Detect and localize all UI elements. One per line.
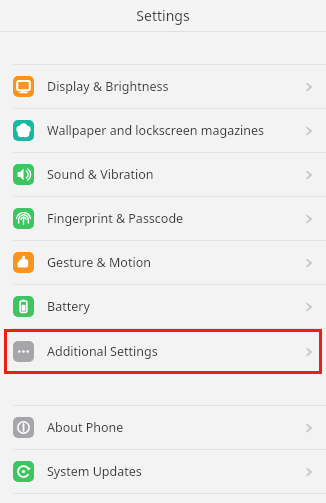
button[interactable]: Battery — [0, 285, 326, 328]
button[interactable]: Wallpaper and lockscreen magazines — [0, 109, 326, 152]
button[interactable]: Gesture & Motion — [0, 241, 326, 284]
button[interactable]: Additional Settings — [4, 329, 322, 374]
staticText: Wallpaper and lockscreen magazines — [47, 122, 302, 139]
staticText: Sound & Vibration — [47, 166, 302, 183]
staticText: Battery — [47, 298, 302, 315]
staticText: Additional Settings — [47, 343, 302, 360]
staticText: Settings — [136, 6, 190, 25]
button[interactable]: About Phone — [0, 406, 326, 449]
staticText: System Updates — [47, 463, 302, 480]
button[interactable]: Sound & Vibration — [0, 153, 326, 196]
button[interactable]: Display & Brightness — [0, 65, 326, 108]
button[interactable]: Fingerprint & Passcode — [0, 197, 326, 240]
staticText: About Phone — [47, 419, 302, 436]
staticText: Fingerprint & Passcode — [47, 210, 302, 227]
button[interactable]: System Updates — [0, 450, 326, 493]
staticText: Display & Brightness — [47, 78, 302, 95]
staticText: Gesture & Motion — [47, 254, 302, 271]
